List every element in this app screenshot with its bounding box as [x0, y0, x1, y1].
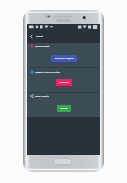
staticText: Export — [36, 35, 44, 38]
staticText: BACKUP PROJECT — [55, 57, 74, 60]
button[interactable]: Backup Project — [27, 43, 100, 67]
button[interactable]: Publish to DISTCCPH.Store — [27, 68, 100, 92]
staticText: Share Projects — [35, 95, 49, 98]
button[interactable]: Back — [27, 30, 36, 43]
staticText: Backup Project — [35, 45, 50, 48]
button[interactable]: SHARE — [57, 105, 71, 112]
button[interactable]: PUBLISH — [56, 79, 72, 86]
staticText: SAMSUNG — [56, 19, 71, 23]
staticText: PUBLISH — [59, 81, 69, 84]
staticText: SHARE — [60, 107, 68, 110]
button[interactable]: BACKUP PROJECT — [51, 55, 77, 62]
button[interactable]: Share Projects — [27, 93, 100, 117]
staticText: Publish to DISTCCPH.Store — [35, 71, 61, 74]
